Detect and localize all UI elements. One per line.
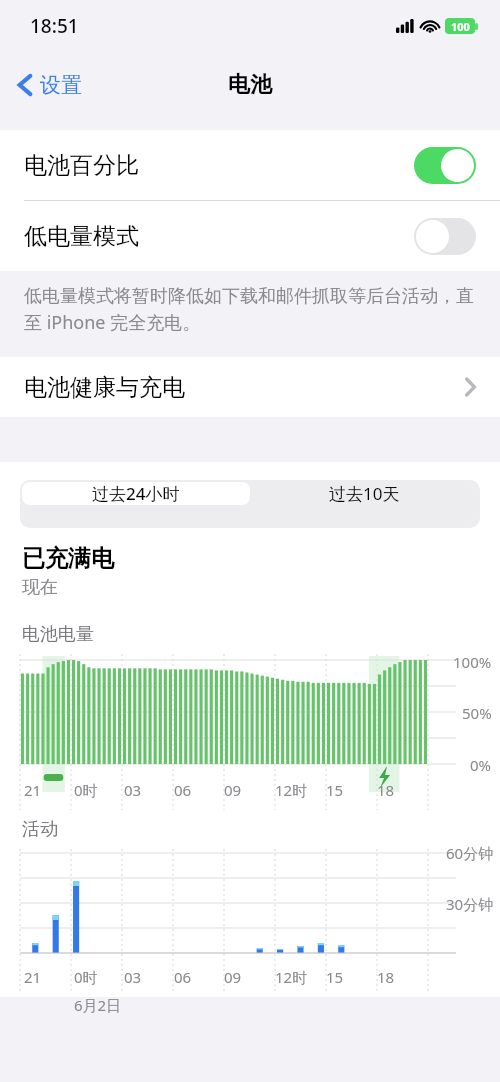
staticText: 电池 [228, 71, 272, 99]
staticText: 低电量模式将暂时降低如下载和邮件抓取等后台活动，直至 iPhone 完全充电。 [24, 285, 476, 335]
button[interactable]: 过去24小时 [22, 482, 250, 505]
staticText: 过去24小时 [92, 482, 180, 505]
staticText: 电池百分比 [24, 151, 139, 180]
staticText: 30分钟 [446, 894, 494, 914]
staticText: 21 [24, 780, 42, 800]
staticText: 活动 [22, 818, 58, 841]
staticText: 03 [124, 967, 142, 987]
staticText: 09 [224, 967, 242, 987]
button[interactable]: 设置 [14, 66, 86, 104]
button[interactable]: 电池健康与充电 [0, 357, 500, 417]
staticText: 低电量模式 [24, 222, 139, 251]
staticText: 已充满电 [22, 544, 114, 573]
staticText: 21 [24, 967, 42, 987]
staticText: 06 [174, 780, 192, 800]
staticText: 12时 [275, 780, 308, 800]
staticText: 电池健康与充电 [24, 373, 185, 402]
staticText: 50% [462, 703, 492, 723]
staticText: 现在 [22, 576, 58, 599]
staticText: 100% [453, 652, 492, 672]
button[interactable]: 过去10天 [250, 482, 478, 505]
staticText: 12时 [275, 967, 308, 987]
staticText: 06 [174, 967, 192, 987]
staticText: 09 [224, 780, 242, 800]
staticText: 15 [326, 967, 344, 987]
staticText: 过去10天 [329, 482, 400, 505]
staticText: 03 [124, 780, 142, 800]
button[interactable]: 电池百分比 [0, 130, 500, 200]
staticText: 18:51 [30, 13, 79, 39]
staticText: 15 [326, 780, 344, 800]
staticText: 0时 [74, 967, 98, 987]
button[interactable]: 低电量模式 [0, 201, 500, 271]
staticText: 100 [451, 19, 470, 34]
staticText: 设置 [40, 72, 82, 98]
staticText: 60分钟 [446, 843, 494, 863]
staticText: 0% [470, 755, 492, 775]
staticText: 18 [377, 780, 395, 800]
staticText: 电池电量 [22, 623, 94, 646]
staticText: 6月2日 [74, 995, 122, 1015]
staticText: 0时 [74, 780, 98, 800]
staticText: 18 [377, 967, 395, 987]
